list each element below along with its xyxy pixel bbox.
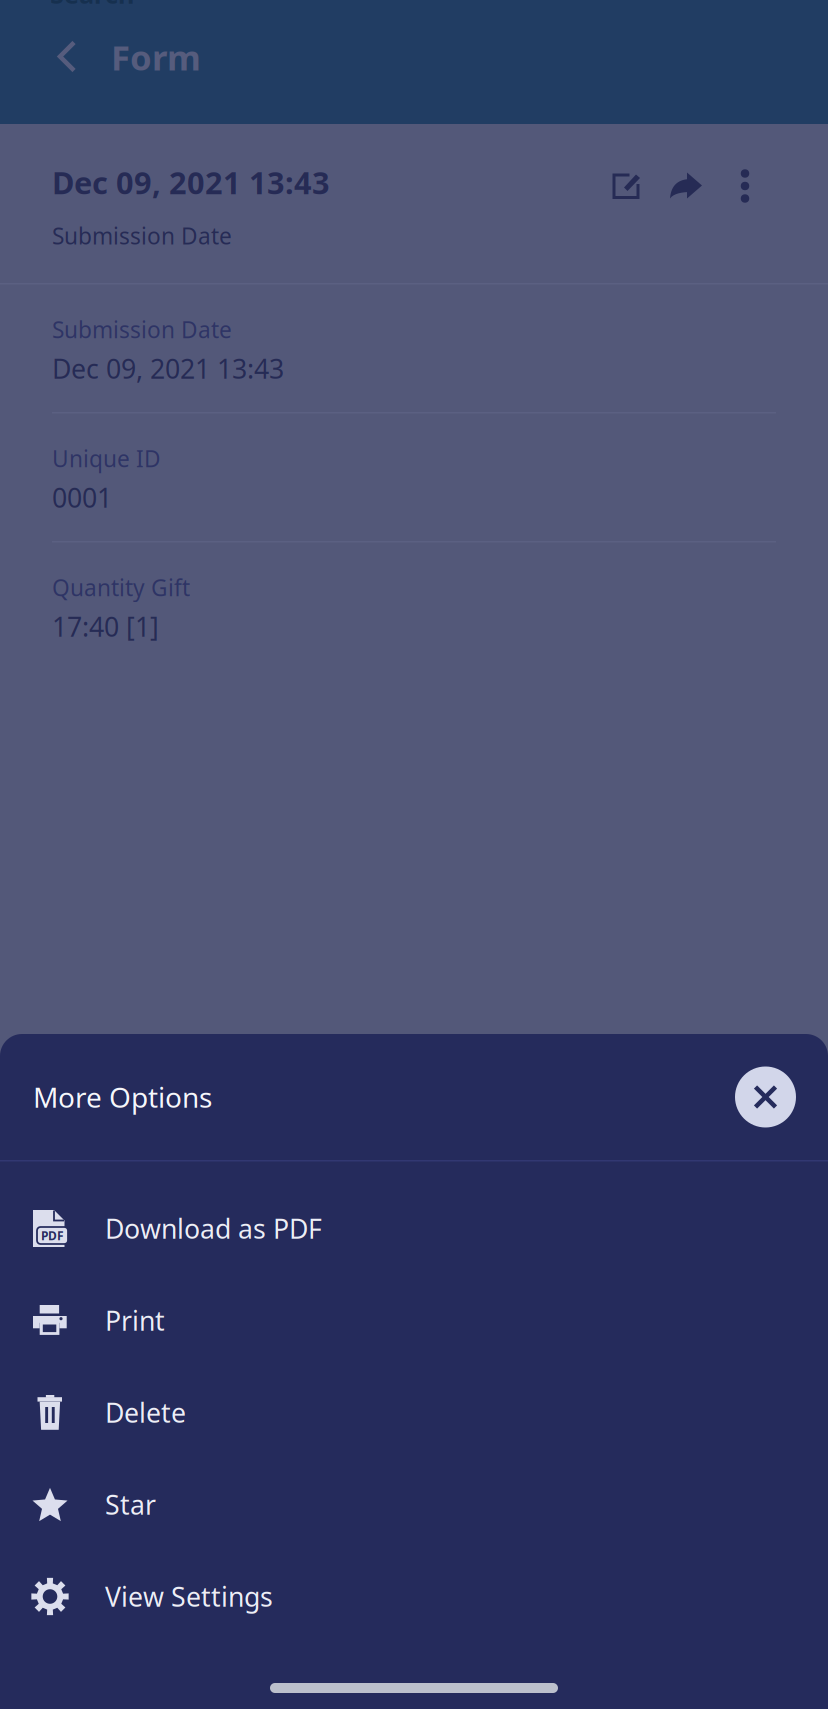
button[interactable]: Back: [46, 35, 90, 79]
staticText: Submission Date: [52, 314, 232, 345]
staticText: Submission Date: [52, 221, 232, 251]
button[interactable]: Star: [0, 1458, 828, 1550]
button[interactable]: More options: [723, 164, 767, 208]
staticText: Unique ID: [52, 443, 161, 474]
staticText: 17:40 [1]: [52, 609, 159, 644]
staticText: Form: [111, 34, 201, 80]
button[interactable]: Edit: [605, 164, 649, 208]
staticText: Search: [50, 0, 134, 11]
button[interactable]: PDF: [0, 1182, 828, 1274]
staticText: Dec 09, 2021 13:43: [52, 162, 330, 203]
staticText: 0001: [52, 480, 112, 515]
staticText: Quantity Gift: [52, 572, 190, 603]
button[interactable]: Close: [735, 1066, 796, 1127]
staticText: Star: [105, 1487, 156, 1522]
button[interactable]: View Settings: [0, 1550, 828, 1642]
button[interactable]: Share: [664, 164, 708, 208]
staticText: PDF: [41, 1227, 64, 1243]
staticText: Print: [105, 1303, 165, 1338]
staticText: Dec 09, 2021 13:43: [52, 351, 284, 386]
button[interactable]: Delete: [0, 1366, 828, 1458]
staticText: Delete: [105, 1395, 186, 1430]
staticText: View Settings: [105, 1579, 273, 1614]
button[interactable]: Print: [0, 1274, 828, 1366]
staticText: More Options: [33, 1078, 212, 1116]
staticText: Download as PDF: [105, 1211, 322, 1246]
